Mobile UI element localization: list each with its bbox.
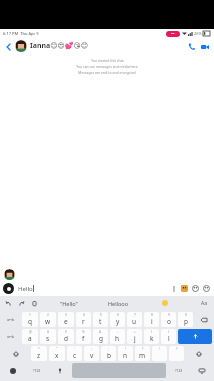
- staticText: +: [134, 330, 136, 334]
- button[interactable]: 7: [127, 312, 142, 327]
- staticText: b: [107, 351, 111, 360]
- button[interactable]: Redo: [17, 299, 25, 307]
- staticText: ': [74, 347, 75, 351]
- button[interactable]: Voice call: [185, 40, 198, 53]
- button[interactable]: Open camera: [3, 283, 14, 294]
- button[interactable]: $: [58, 329, 74, 344]
- button[interactable]: ?: [135, 346, 150, 361]
- staticText: z: [37, 351, 41, 360]
- button[interactable]: +: [127, 329, 142, 344]
- button[interactable]: Video call: [198, 40, 211, 53]
- staticText: a: [28, 334, 32, 343]
- button[interactable]: @: [22, 329, 38, 344]
- staticText: Aa: [201, 300, 208, 307]
- button[interactable]: Add: [202, 284, 211, 293]
- button[interactable]: Hello: [18, 283, 169, 294]
- button[interactable]: Back: [3, 41, 14, 52]
- staticText: -: [117, 330, 119, 334]
- staticText: n: [123, 351, 128, 360]
- button[interactable]: Symbols: [26, 363, 47, 378]
- button[interactable]: *: [31, 346, 47, 361]
- staticText: u: [132, 317, 137, 326]
- button[interactable]: Backspace: [195, 312, 212, 327]
- staticText: "Hello": [60, 300, 78, 307]
- staticText: e: [64, 317, 68, 326]
- button[interactable]: Hellooo: [105, 300, 131, 307]
- button[interactable]: Symbols right: [168, 363, 189, 378]
- staticText: 5: [100, 313, 102, 317]
- button[interactable]: Format text: [169, 284, 178, 293]
- button[interactable]: Switch language: [2, 312, 20, 327]
- staticText: j: [134, 334, 136, 343]
- button[interactable]: Clipboard: [30, 299, 38, 307]
- staticText: w: [45, 317, 51, 326]
- button[interactable]: &: [93, 329, 108, 344]
- button[interactable]: !: [118, 346, 133, 361]
- button[interactable]: 4: [76, 312, 91, 327]
- staticText: a↔b: [7, 334, 15, 339]
- staticText: You started this chat: [91, 58, 124, 63]
- staticText: ?: [176, 347, 178, 351]
- staticText: y: [116, 317, 120, 326]
- staticText: Hellooo: [108, 300, 128, 307]
- button[interactable]: 5: [93, 312, 108, 327]
- button[interactable]: 3: [58, 312, 74, 327]
- staticText: ?123: [33, 368, 41, 373]
- staticText: 3: [65, 313, 67, 317]
- button[interactable]: Ianna😊😍💕😘😊: [15, 40, 185, 52]
- staticText: 6: [117, 313, 119, 317]
- staticText: Ianna😊😍💕😘😊: [30, 41, 89, 51]
- staticText: @: [29, 330, 32, 334]
- button[interactable]: 0: [178, 312, 193, 327]
- staticText: *: [38, 347, 40, 351]
- button[interactable]: Language: [2, 329, 20, 344]
- button[interactable]: -: [110, 329, 125, 344]
- button[interactable]: Undo: [4, 299, 12, 307]
- button[interactable]: Emoji: [191, 284, 200, 293]
- button[interactable]: ': [67, 346, 82, 361]
- button[interactable]: (: [144, 329, 159, 344]
- staticText: f: [82, 334, 85, 343]
- button[interactable]: Shift right: [186, 346, 212, 361]
- button[interactable]: 6: [110, 312, 125, 327]
- staticText: 1: [29, 313, 31, 317]
- button[interactable]: Hide keyboard: [191, 363, 212, 378]
- staticText: t: [99, 317, 102, 326]
- staticText: ?: [142, 347, 144, 351]
- staticText: !: [159, 347, 160, 351]
- button[interactable]: :: [84, 346, 99, 361]
- button[interactable]: #: [40, 329, 56, 344]
- staticText: 7: [134, 313, 136, 317]
- button[interactable]: ;: [101, 346, 116, 361]
- button[interactable]: Text settings: [199, 300, 210, 307]
- button[interactable]: Send: [178, 329, 212, 344]
- button[interactable]: 9: [161, 312, 176, 327]
- button[interactable]: Stickers: [180, 284, 189, 293]
- staticText: q: [28, 317, 32, 326]
- button[interactable]: 8: [144, 312, 159, 327]
- staticText: 8: [151, 313, 153, 317]
- button[interactable]: "Hello": [57, 300, 81, 307]
- staticText: l: [168, 334, 170, 343]
- button[interactable]: Emoji suggestion: [161, 299, 169, 307]
- button[interactable]: ): [161, 329, 176, 344]
- staticText: You can see messages and media here: [76, 64, 138, 69]
- button[interactable]: ?: [169, 346, 184, 361]
- staticText: (: [151, 330, 152, 334]
- staticText: &: [99, 330, 102, 334]
- button[interactable]: !: [152, 346, 167, 361]
- button[interactable]: %: [76, 329, 91, 344]
- button[interactable]: Emoji keyboard: [2, 363, 24, 378]
- button[interactable]: 1: [22, 312, 38, 327]
- staticText: 2: [47, 313, 49, 317]
- button[interactable]: 2: [40, 312, 56, 327]
- staticText: •••: [171, 32, 175, 36]
- button[interactable]: Voice input: [49, 363, 70, 378]
- staticText: s: [46, 334, 50, 343]
- staticText: 26%: [194, 31, 202, 36]
- button[interactable]: ": [49, 346, 65, 361]
- staticText: k: [150, 334, 154, 343]
- staticText: o: [167, 317, 171, 326]
- button[interactable]: Shift: [2, 346, 29, 361]
